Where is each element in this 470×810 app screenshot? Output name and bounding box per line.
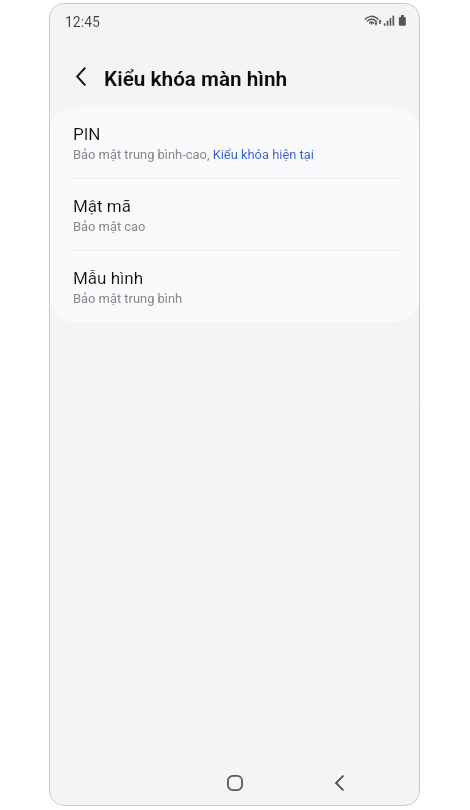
button[interactable]: Mật mã [49,179,420,250]
button[interactable]: Home [215,763,255,803]
staticText: Bảo mật trung bình [73,291,183,306]
staticText: Bảo mật cao [73,219,146,234]
staticText: 12:45 [65,14,100,30]
button[interactable]: PIN [49,107,420,178]
button[interactable]: Back [62,57,100,95]
staticText: Kiểu khóa màn hình [104,67,288,91]
staticText: Bảo mật trung bình-cao, Kiểu khóa hiện t… [73,147,314,162]
staticText: Mẫu hình [73,268,144,288]
button[interactable]: Back [319,763,359,803]
button[interactable]: Mẫu hình [49,251,420,322]
staticText: Mật mã [73,196,132,216]
staticText: PIN [73,124,101,144]
